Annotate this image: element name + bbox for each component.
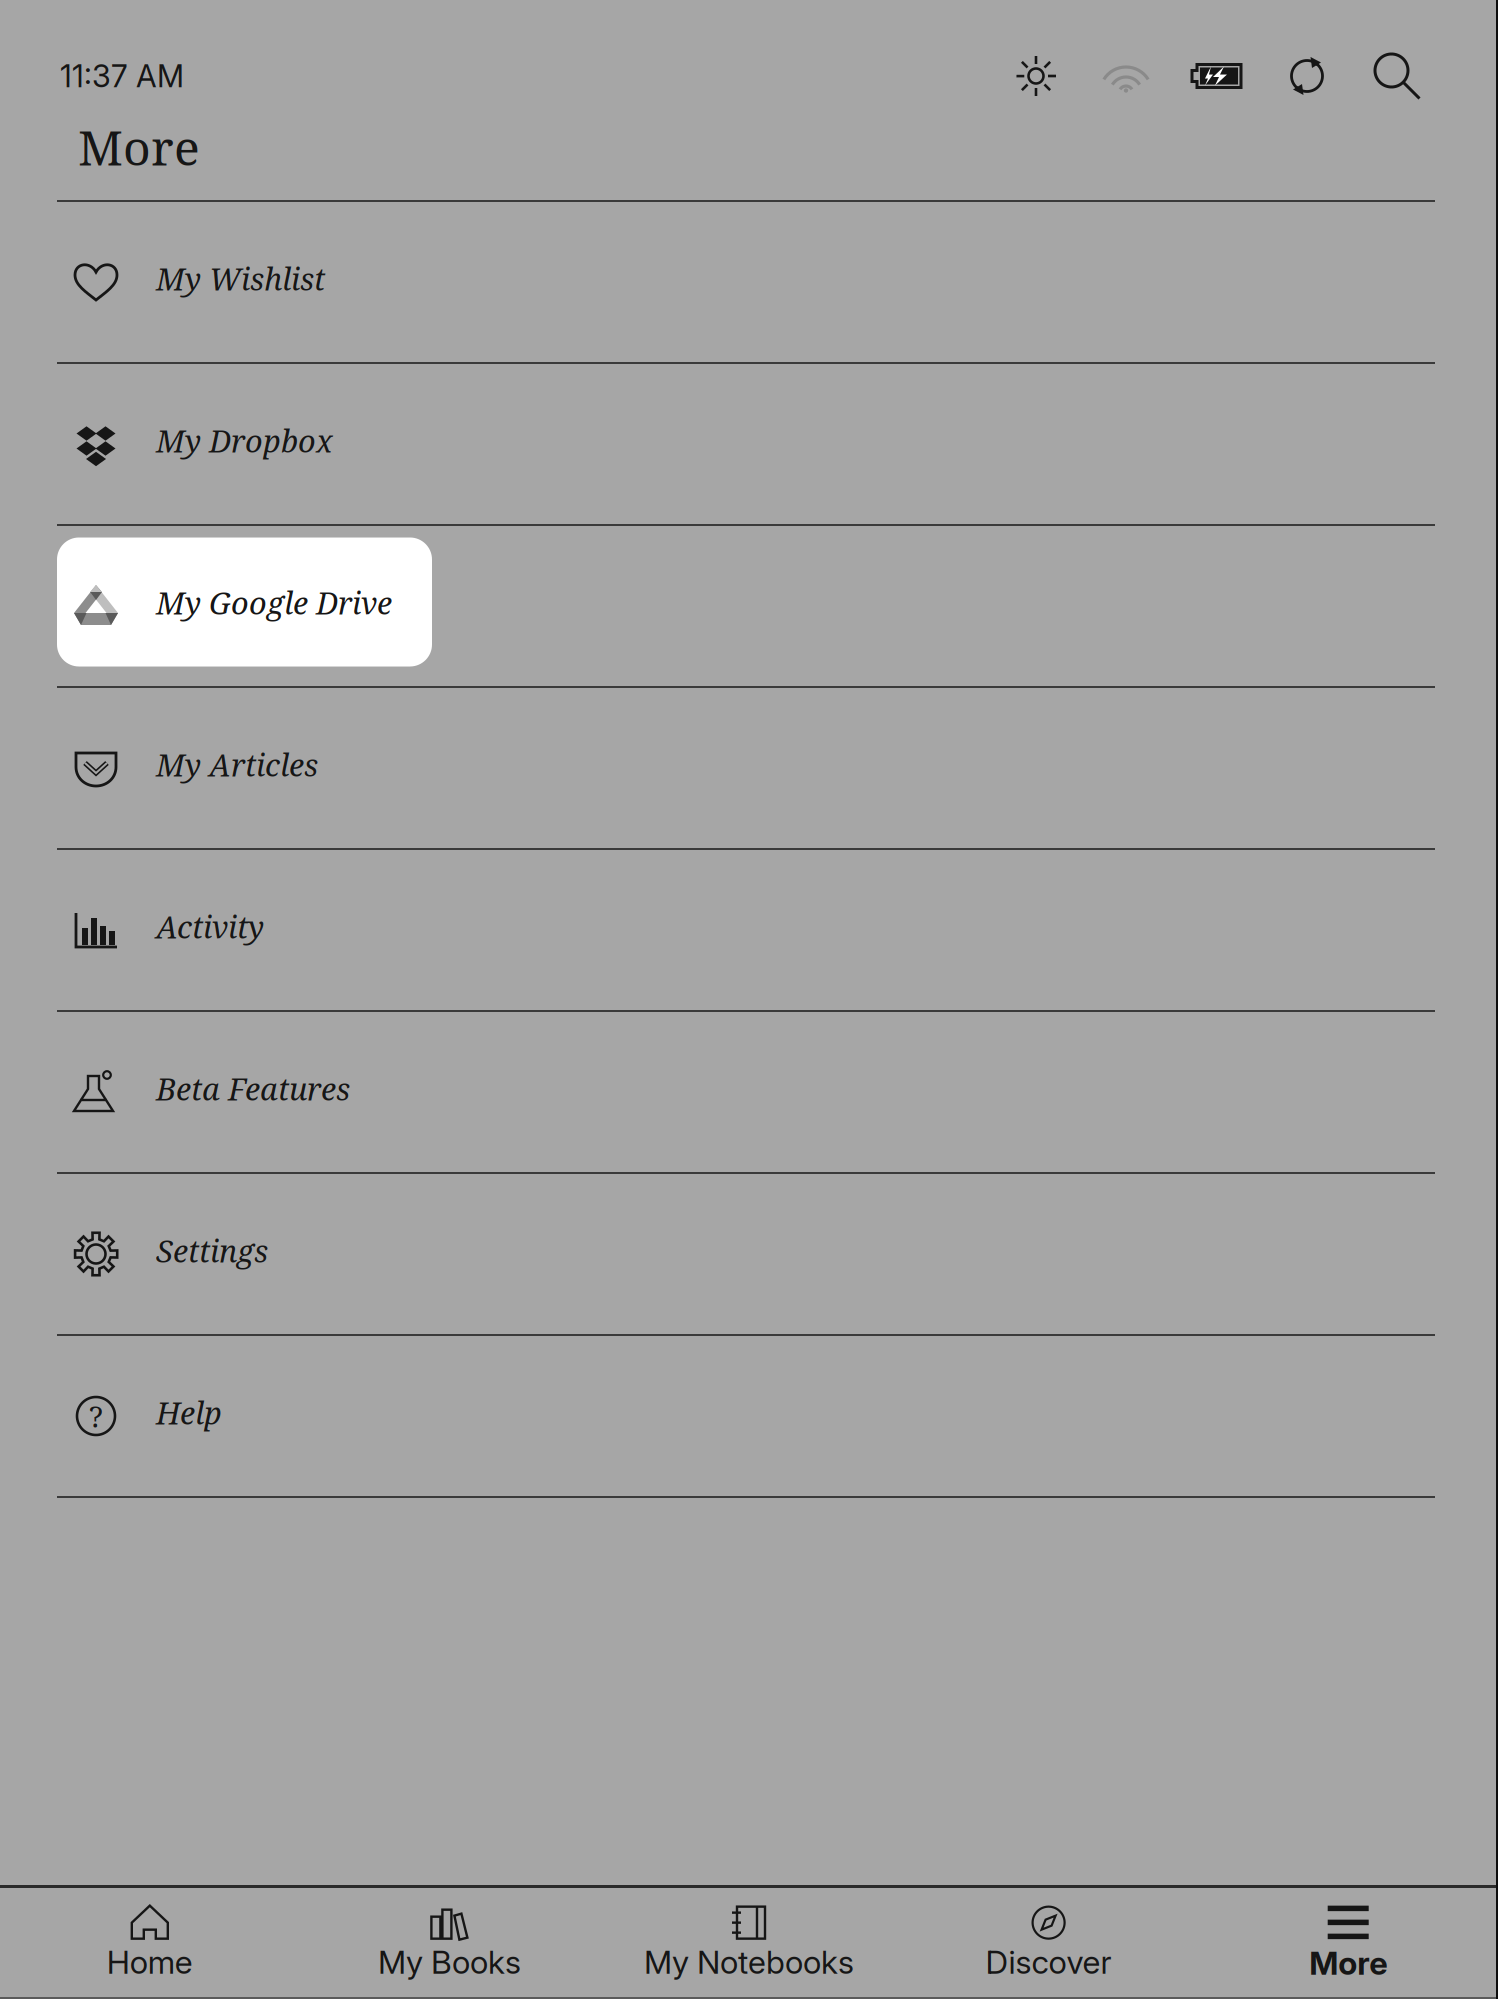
- button[interactable]: Beta Features: [0, 1012, 1498, 1174]
- staticText: My Articles: [156, 744, 318, 785]
- staticText: Settings: [156, 1230, 268, 1271]
- button[interactable]: My Books: [300, 1886, 599, 1998]
- staticText: My Dropbox: [156, 420, 333, 461]
- button[interactable]: My Dropbox: [0, 364, 1498, 526]
- button[interactable]: My Wishlist: [0, 202, 1498, 364]
- button[interactable]: Brightness: [1010, 50, 1062, 102]
- button[interactable]: More: [1198, 1886, 1498, 1998]
- button[interactable]: My Articles: [0, 688, 1498, 850]
- staticText: Activity: [156, 906, 264, 947]
- staticText: Help: [156, 1392, 222, 1433]
- staticText: My Google Drive: [156, 582, 392, 623]
- button[interactable]: My Notebooks: [599, 1886, 899, 1998]
- staticText: Home: [107, 1943, 193, 1981]
- staticText: Beta Features: [156, 1068, 350, 1109]
- button[interactable]: Activity: [0, 850, 1498, 1012]
- button[interactable]: Settings: [0, 1174, 1498, 1336]
- staticText: My Wishlist: [156, 258, 325, 299]
- button[interactable]: ?: [0, 1336, 1498, 1498]
- button[interactable]: Sync: [1281, 50, 1333, 102]
- button[interactable]: Discover: [899, 1886, 1198, 1998]
- staticText: 11:37 AM: [60, 57, 184, 94]
- staticText: More: [1309, 1944, 1387, 1982]
- staticText: More: [78, 114, 200, 180]
- staticText: ?: [89, 1396, 103, 1436]
- button[interactable]: My Google Drive: [0, 526, 1498, 688]
- button[interactable]: Search: [1371, 50, 1423, 102]
- staticText: My Books: [378, 1943, 521, 1981]
- staticText: Discover: [986, 1943, 1112, 1981]
- button[interactable]: Home: [0, 1886, 300, 1998]
- staticText: My Notebooks: [644, 1943, 854, 1981]
